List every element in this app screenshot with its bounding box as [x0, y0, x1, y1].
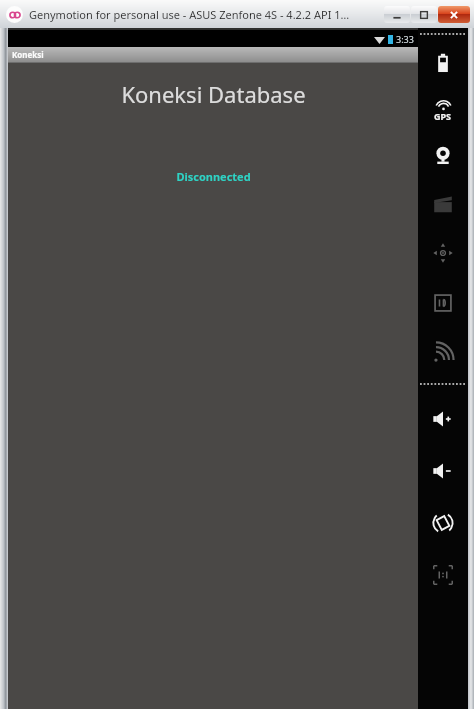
- button[interactable]: Disconnected: [176, 169, 251, 184]
- button[interactable]: GPS: [426, 96, 460, 126]
- staticText: Genymotion for personal use - ASUS Zenfo…: [29, 7, 350, 22]
- button[interactable]: Identifiers: [428, 288, 458, 318]
- button[interactable]: Camera: [428, 140, 458, 170]
- staticText: GPS: [434, 110, 452, 122]
- button[interactable]: Rotate screen: [428, 508, 458, 538]
- staticText: Disconnected: [176, 169, 251, 184]
- staticText: 3:33: [396, 33, 414, 45]
- button[interactable]: Maximize: [411, 6, 437, 23]
- button[interactable]: Volume up: [428, 404, 458, 434]
- button[interactable]: Video recorder: [428, 188, 458, 218]
- button[interactable]: Minimize: [384, 6, 410, 23]
- button[interactable]: Volume down: [428, 456, 458, 486]
- button[interactable]: Actual size: [428, 560, 458, 590]
- button[interactable]: Battery: [428, 48, 458, 78]
- staticText: Koneksi Database: [121, 79, 306, 109]
- button[interactable]: Close: [438, 6, 470, 23]
- button[interactable]: Accelerometer: [428, 238, 458, 268]
- staticText: Koneksi: [12, 49, 44, 60]
- button[interactable]: Network: [428, 338, 458, 368]
